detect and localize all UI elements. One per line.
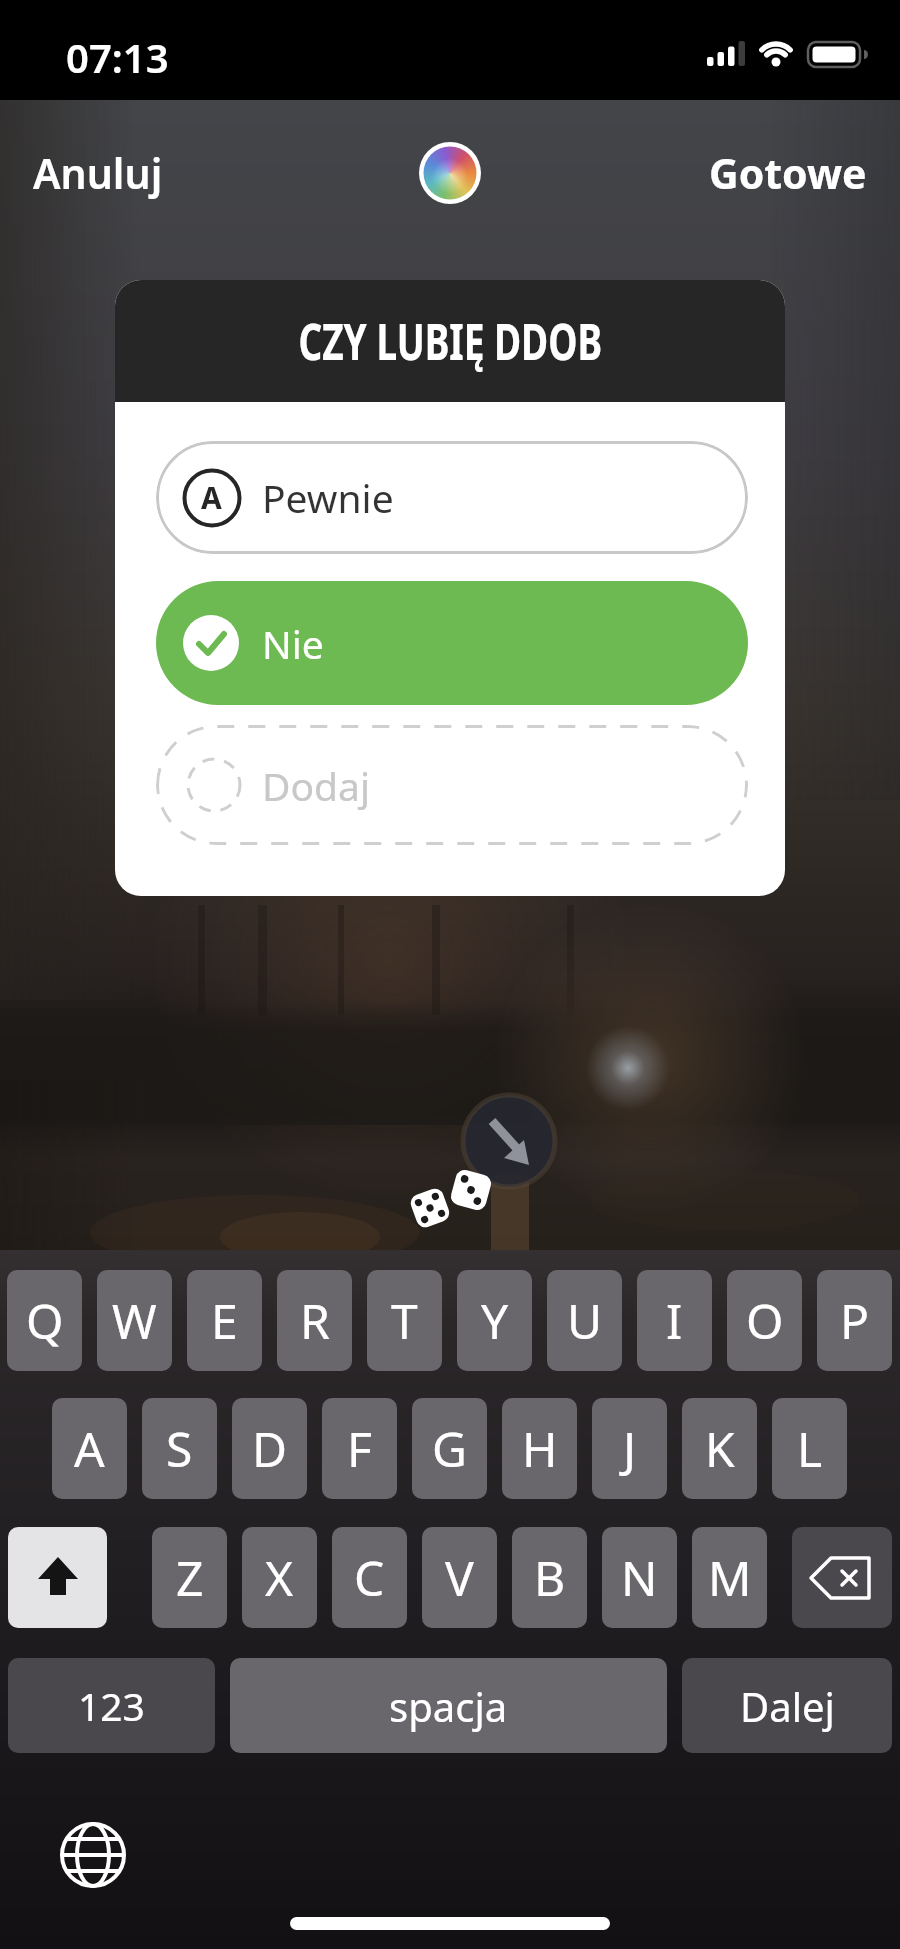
staticText: R: [300, 1288, 330, 1353]
button[interactable]: D: [232, 1398, 307, 1499]
button[interactable]: T: [367, 1270, 442, 1371]
staticText: Gotowe: [709, 145, 867, 201]
button[interactable]: Dodaj: [156, 725, 748, 845]
button[interactable]: Z: [152, 1527, 227, 1628]
button[interactable]: R: [277, 1270, 352, 1371]
staticText: Nie: [262, 617, 324, 670]
staticText: H: [522, 1416, 558, 1481]
button[interactable]: N: [602, 1527, 677, 1628]
button[interactable]: Gotowe: [709, 145, 867, 201]
staticText: Pewnie: [262, 471, 394, 524]
button[interactable]: P: [817, 1270, 892, 1371]
button[interactable]: V: [422, 1527, 497, 1628]
staticText: X: [265, 1545, 294, 1610]
button[interactable]: Q: [7, 1270, 82, 1371]
button[interactable]: W: [97, 1270, 172, 1371]
button[interactable]: G: [412, 1398, 487, 1499]
button[interactable]: E: [187, 1270, 262, 1371]
staticText: P: [840, 1288, 870, 1353]
button[interactable]: Dalej: [682, 1658, 892, 1753]
staticText: W: [112, 1288, 157, 1353]
staticText: spacja: [389, 1679, 508, 1733]
button[interactable]: O: [727, 1270, 802, 1371]
staticText: J: [623, 1416, 637, 1481]
button[interactable]: L: [772, 1398, 847, 1499]
button[interactable]: K: [682, 1398, 757, 1499]
staticText: C: [354, 1545, 385, 1610]
staticText: F: [347, 1416, 372, 1481]
button[interactable]: F: [322, 1398, 397, 1499]
staticText: A: [74, 1416, 105, 1481]
staticText: K: [705, 1416, 735, 1481]
button[interactable]: [792, 1527, 892, 1628]
button[interactable]: H: [502, 1398, 577, 1499]
staticText: T: [391, 1288, 418, 1353]
staticText: M: [708, 1545, 752, 1610]
staticText: N: [621, 1545, 658, 1610]
staticText: B: [534, 1545, 566, 1610]
button[interactable]: A: [156, 441, 748, 554]
button[interactable]: J: [592, 1398, 667, 1499]
staticText: Dalej: [740, 1679, 835, 1733]
button[interactable]: Y: [457, 1270, 532, 1371]
staticText: E: [211, 1288, 238, 1353]
staticText: Dodaj: [262, 759, 370, 812]
staticText: O: [746, 1288, 784, 1353]
staticText: Z: [176, 1545, 204, 1610]
staticText: U: [567, 1288, 603, 1353]
staticText: I: [666, 1288, 683, 1353]
button[interactable]: [417, 140, 483, 206]
button[interactable]: [58, 1820, 128, 1890]
staticText: A: [201, 477, 222, 518]
staticText: V: [445, 1545, 474, 1610]
button[interactable]: I: [637, 1270, 712, 1371]
button[interactable]: [8, 1527, 107, 1628]
staticText: D: [252, 1416, 288, 1481]
button[interactable]: Nie: [156, 581, 748, 705]
button[interactable]: Anuluj: [33, 145, 163, 201]
button[interactable]: B: [512, 1527, 587, 1628]
button[interactable]: X: [242, 1527, 317, 1628]
button[interactable]: C: [332, 1527, 407, 1628]
staticText: G: [432, 1416, 467, 1481]
button[interactable]: A: [52, 1398, 127, 1499]
staticText: Q: [26, 1288, 64, 1353]
staticText: Y: [481, 1288, 509, 1353]
button[interactable]: M: [692, 1527, 767, 1628]
staticText: 123: [78, 1679, 145, 1732]
staticText: Anuluj: [33, 145, 163, 201]
button[interactable]: S: [142, 1398, 217, 1499]
staticText: CZY LUBIĘ DDOB: [298, 307, 602, 375]
button[interactable]: 123: [8, 1658, 215, 1753]
staticText: L: [797, 1416, 823, 1481]
staticText: S: [166, 1416, 193, 1481]
button[interactable]: U: [547, 1270, 622, 1371]
button[interactable]: spacja: [230, 1658, 667, 1753]
staticText: 07:13: [66, 30, 169, 84]
